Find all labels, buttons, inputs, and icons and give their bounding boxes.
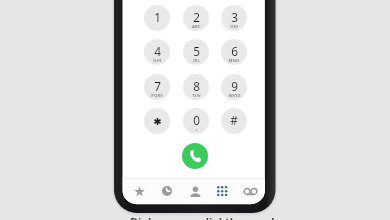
staticText: 9 [231, 78, 238, 94]
staticText: dial the numb [202, 214, 279, 220]
staticText: + [195, 126, 198, 132]
staticText: PQRS [151, 92, 163, 98]
button[interactable]: 6 [221, 39, 247, 65]
staticText: 5 [193, 43, 200, 59]
staticText: 4 [154, 43, 161, 59]
staticText: # [230, 112, 238, 128]
staticText: 3 [231, 9, 238, 25]
staticText: 7 [154, 78, 161, 94]
button[interactable]: 1 [144, 5, 170, 31]
button[interactable]: Call [182, 143, 208, 169]
button[interactable]: # [221, 108, 247, 134]
button[interactable]: 5 [183, 39, 209, 65]
staticText: 1 [154, 9, 161, 25]
staticText: 0 [193, 112, 200, 128]
staticText: 6 [231, 43, 238, 59]
staticText: ABC [192, 23, 201, 29]
staticText: 2 [193, 9, 200, 25]
staticText: TUV [192, 92, 201, 98]
button[interactable] [144, 108, 170, 134]
staticText: JKL [193, 57, 200, 63]
button[interactable]: 7 [144, 74, 170, 100]
staticText: WXYZ [228, 92, 241, 98]
button[interactable]: Contacts [182, 178, 208, 204]
staticText: Dial [130, 214, 152, 220]
button[interactable]: Keypad [209, 178, 235, 204]
staticText: GHI [153, 57, 162, 63]
button[interactable]: 0 [183, 108, 209, 134]
button[interactable]: Favorites [126, 178, 152, 204]
button[interactable]: Recents [154, 178, 180, 204]
button[interactable]: Voicemail [237, 178, 263, 204]
staticText: DEF [230, 23, 239, 29]
button[interactable]: 2 [183, 5, 209, 31]
button[interactable]: 8 [183, 74, 209, 100]
staticText: 8 [193, 78, 200, 94]
button[interactable]: 3 [221, 5, 247, 31]
button[interactable]: 4 [144, 39, 170, 65]
button[interactable]: 9 [221, 74, 247, 100]
staticText: MNO [228, 57, 240, 63]
